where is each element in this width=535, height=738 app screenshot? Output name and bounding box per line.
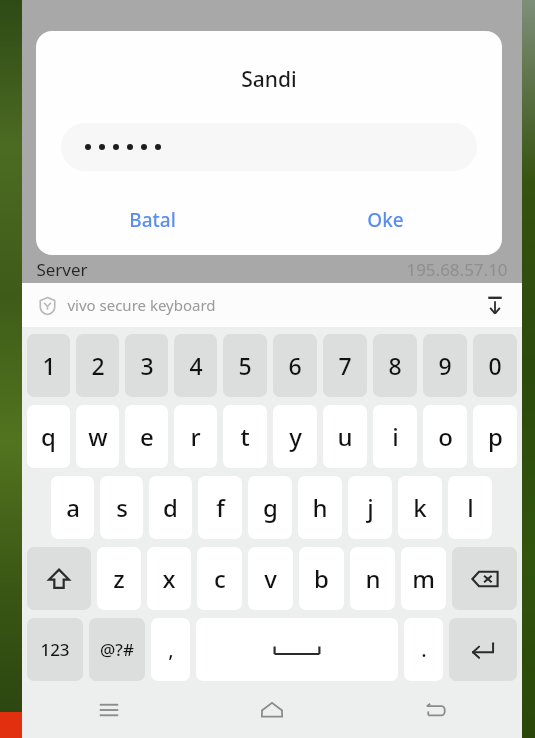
button[interactable]: k	[398, 476, 442, 539]
staticText: l	[467, 491, 474, 524]
button[interactable]: r	[174, 405, 217, 468]
staticText: t	[240, 420, 250, 453]
staticText: w	[88, 420, 108, 453]
button[interactable]: g	[248, 476, 292, 539]
button[interactable]: w	[76, 405, 119, 468]
button[interactable]: 123	[27, 618, 83, 681]
button[interactable]: 2	[76, 334, 119, 397]
staticText: x	[162, 562, 176, 595]
button[interactable]: @?#	[89, 618, 145, 681]
staticText: 9	[438, 350, 452, 381]
staticText: 6	[288, 350, 302, 381]
button[interactable]: x	[147, 547, 191, 610]
staticText: s	[116, 491, 128, 524]
staticText: i	[392, 420, 399, 453]
staticText: g	[263, 491, 278, 524]
button[interactable]: h	[298, 476, 342, 539]
staticText: 3	[140, 350, 154, 381]
button[interactable]: .	[404, 618, 443, 681]
staticText: 195.68.57.10	[406, 258, 508, 281]
staticText: b	[314, 562, 329, 595]
staticText: vivo secure keyboard	[67, 295, 216, 315]
button[interactable]: p	[473, 405, 517, 468]
button[interactable]: m	[401, 547, 446, 610]
staticText: ,	[168, 636, 174, 663]
button[interactable]: n	[350, 547, 395, 610]
staticText: q	[41, 420, 56, 453]
staticText: h	[312, 491, 328, 524]
staticText: Sandi	[241, 65, 297, 94]
staticText: m	[412, 562, 435, 595]
button[interactable]: Oke	[269, 189, 502, 251]
button[interactable]: i	[373, 405, 417, 468]
button[interactable]: a	[51, 476, 94, 539]
button[interactable]: Recents	[86, 688, 132, 732]
staticText: a	[66, 491, 80, 524]
button[interactable]: u	[323, 405, 367, 468]
button[interactable]: t	[223, 405, 267, 468]
staticText: z	[113, 562, 125, 595]
button[interactable]: 1	[27, 334, 70, 397]
button[interactable]: z	[97, 547, 141, 610]
staticText: e	[140, 420, 154, 453]
staticText: Oke	[367, 207, 404, 233]
button[interactable]: 8	[373, 334, 417, 397]
staticText: y	[289, 420, 302, 453]
button[interactable]: l	[448, 476, 492, 539]
button[interactable]: q	[27, 405, 70, 468]
button[interactable]: 6	[273, 334, 317, 397]
button[interactable]: Backspace	[452, 547, 517, 610]
button[interactable]: Enter	[449, 618, 517, 681]
button[interactable]: 0	[473, 334, 517, 397]
staticText: 7	[338, 350, 352, 381]
button[interactable]: d	[149, 476, 192, 539]
button[interactable]: Hide keyboard	[480, 290, 510, 320]
staticText: f	[216, 491, 225, 524]
button[interactable]: 3	[125, 334, 168, 397]
staticText: 5	[238, 350, 252, 381]
staticText: n	[365, 562, 381, 595]
staticText: c	[214, 562, 226, 595]
staticText: v	[264, 562, 277, 595]
button[interactable]: f	[198, 476, 242, 539]
button[interactable]: o	[423, 405, 467, 468]
button[interactable]: 7	[323, 334, 367, 397]
staticText: r	[190, 420, 201, 453]
button[interactable]: b	[299, 547, 344, 610]
button[interactable]	[61, 123, 477, 171]
staticText: @?#	[100, 638, 134, 661]
button[interactable]: 9	[423, 334, 467, 397]
button[interactable]: j	[348, 476, 392, 539]
button[interactable]: 4	[174, 334, 217, 397]
staticText: 4	[189, 350, 203, 381]
button[interactable]: v	[248, 547, 293, 610]
button[interactable]: Batal	[36, 189, 269, 251]
staticText: Server	[36, 258, 88, 281]
button[interactable]: c	[197, 547, 242, 610]
staticText: 2	[91, 350, 105, 381]
staticText: 1	[42, 350, 56, 381]
button[interactable]: Shift	[27, 547, 91, 610]
button[interactable]: s	[100, 476, 143, 539]
staticText: k	[413, 491, 427, 524]
button[interactable]: 5	[223, 334, 267, 397]
button[interactable]: Home	[249, 688, 295, 732]
button[interactable]: Secure keyboard	[36, 294, 58, 316]
staticText: 0	[488, 350, 502, 381]
button[interactable]: Back	[412, 688, 458, 732]
staticText: 123	[40, 638, 70, 661]
staticText: u	[337, 420, 353, 453]
staticText: Batal	[129, 207, 176, 233]
staticText: 8	[388, 350, 402, 381]
button[interactable]: y	[273, 405, 317, 468]
staticText: p	[488, 420, 503, 453]
button[interactable]: Space	[196, 618, 398, 681]
staticText: d	[163, 491, 178, 524]
button[interactable]: ,	[151, 618, 190, 681]
button[interactable]: e	[125, 405, 168, 468]
staticText: .	[421, 636, 427, 663]
staticText: j	[367, 491, 374, 524]
staticText: o	[438, 420, 453, 453]
